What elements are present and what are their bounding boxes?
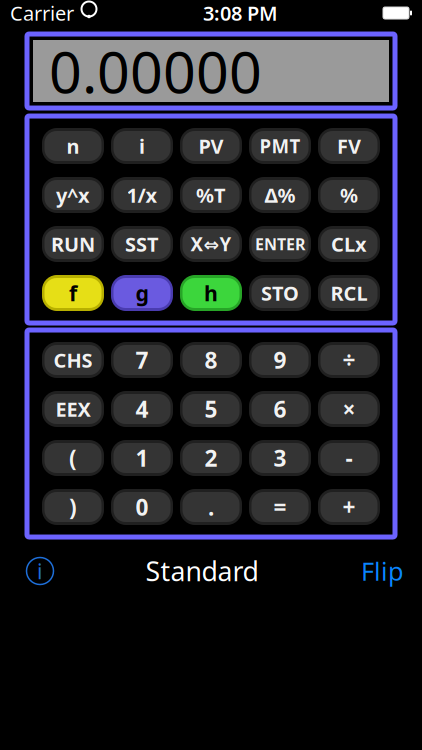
button[interactable]: - xyxy=(318,440,380,476)
staticText: g xyxy=(135,279,148,307)
staticText: % xyxy=(340,182,358,208)
staticText: f xyxy=(69,279,77,307)
staticText: 9 xyxy=(273,345,286,375)
staticText: EEX xyxy=(55,396,90,422)
staticText: SST xyxy=(125,231,159,257)
button[interactable]: 0 xyxy=(111,489,173,525)
button[interactable]: i xyxy=(111,128,173,164)
button[interactable]: %T xyxy=(180,177,242,213)
button[interactable]: ÷ xyxy=(318,342,380,378)
button[interactable]: ENTER xyxy=(249,226,311,262)
button[interactable]: y^x xyxy=(42,177,104,213)
button[interactable]: 6 xyxy=(249,391,311,427)
button[interactable]: CHS xyxy=(42,342,104,378)
staticText: Carrier xyxy=(10,0,74,26)
button[interactable]: CLx xyxy=(318,226,380,262)
button[interactable]: STO xyxy=(249,275,311,311)
staticText: ( xyxy=(69,443,77,473)
button[interactable]: FV xyxy=(318,128,380,164)
button[interactable]: ) xyxy=(42,489,104,525)
button[interactable]: 1/x xyxy=(111,177,173,213)
staticText: 0.00000 xyxy=(49,33,262,109)
staticText: STO xyxy=(261,280,299,306)
staticText: CHS xyxy=(53,347,92,373)
button[interactable]: 2 xyxy=(180,440,242,476)
staticText: CLx xyxy=(331,231,367,257)
staticText: Standard xyxy=(145,553,258,589)
button[interactable]: n xyxy=(42,128,104,164)
staticText: 3 xyxy=(273,443,286,473)
staticText: RCL xyxy=(330,280,367,306)
staticText: n xyxy=(66,133,79,159)
staticText: ÷ xyxy=(342,345,355,375)
staticText: Δ% xyxy=(264,182,295,208)
button[interactable]: Flip xyxy=(342,549,404,593)
staticText: RUN xyxy=(51,231,95,257)
button[interactable]: 1 xyxy=(111,440,173,476)
button[interactable]: 8 xyxy=(180,342,242,378)
staticText: i xyxy=(139,133,145,159)
button[interactable]: EEX xyxy=(42,391,104,427)
button[interactable]: Δ% xyxy=(249,177,311,213)
staticText: PMT xyxy=(259,134,300,158)
button[interactable]: % xyxy=(318,177,380,213)
button[interactable]: 7 xyxy=(111,342,173,378)
button[interactable]: SST xyxy=(111,226,173,262)
button[interactable]: 9 xyxy=(249,342,311,378)
staticText: + xyxy=(342,492,355,522)
staticText: 7 xyxy=(135,345,148,375)
staticText: 4 xyxy=(135,394,148,424)
staticText: y^x xyxy=(56,182,90,208)
staticText: ) xyxy=(69,492,77,522)
staticText: 0 xyxy=(135,492,148,522)
button[interactable]: 3 xyxy=(249,440,311,476)
staticText: %T xyxy=(196,182,226,208)
staticText: FV xyxy=(337,133,361,159)
staticText: 1/x xyxy=(126,182,157,208)
button[interactable]: 4 xyxy=(111,391,173,427)
staticText: 3:08 PM xyxy=(203,0,278,26)
button[interactable]: h xyxy=(180,275,242,311)
staticText: h xyxy=(204,279,218,307)
staticText: X⇔Y xyxy=(190,232,231,256)
staticText: 5 xyxy=(204,394,217,424)
staticText: 1 xyxy=(135,443,148,473)
button[interactable]: X⇔Y xyxy=(180,226,242,262)
staticText: PV xyxy=(198,133,223,159)
button[interactable]: PV xyxy=(180,128,242,164)
button[interactable]: g xyxy=(111,275,173,311)
staticText: . xyxy=(208,492,214,522)
staticText: 2 xyxy=(204,443,217,473)
button[interactable]: = xyxy=(249,489,311,525)
staticText: ENTER xyxy=(255,233,305,255)
button[interactable]: Info xyxy=(18,549,62,593)
button[interactable]: RUN xyxy=(42,226,104,262)
staticText: i xyxy=(37,557,43,585)
staticText: 8 xyxy=(204,345,217,375)
staticText: - xyxy=(345,443,352,473)
button[interactable]: × xyxy=(318,391,380,427)
staticText: 6 xyxy=(273,394,286,424)
button[interactable]: + xyxy=(318,489,380,525)
button[interactable]: f xyxy=(42,275,104,311)
button[interactable]: PMT xyxy=(249,128,311,164)
button[interactable]: . xyxy=(180,489,242,525)
staticText: Flip xyxy=(361,554,404,588)
staticText: × xyxy=(342,394,355,424)
button[interactable]: 5 xyxy=(180,391,242,427)
button[interactable]: RCL xyxy=(318,275,380,311)
staticText: = xyxy=(273,492,286,522)
button[interactable]: ( xyxy=(42,440,104,476)
